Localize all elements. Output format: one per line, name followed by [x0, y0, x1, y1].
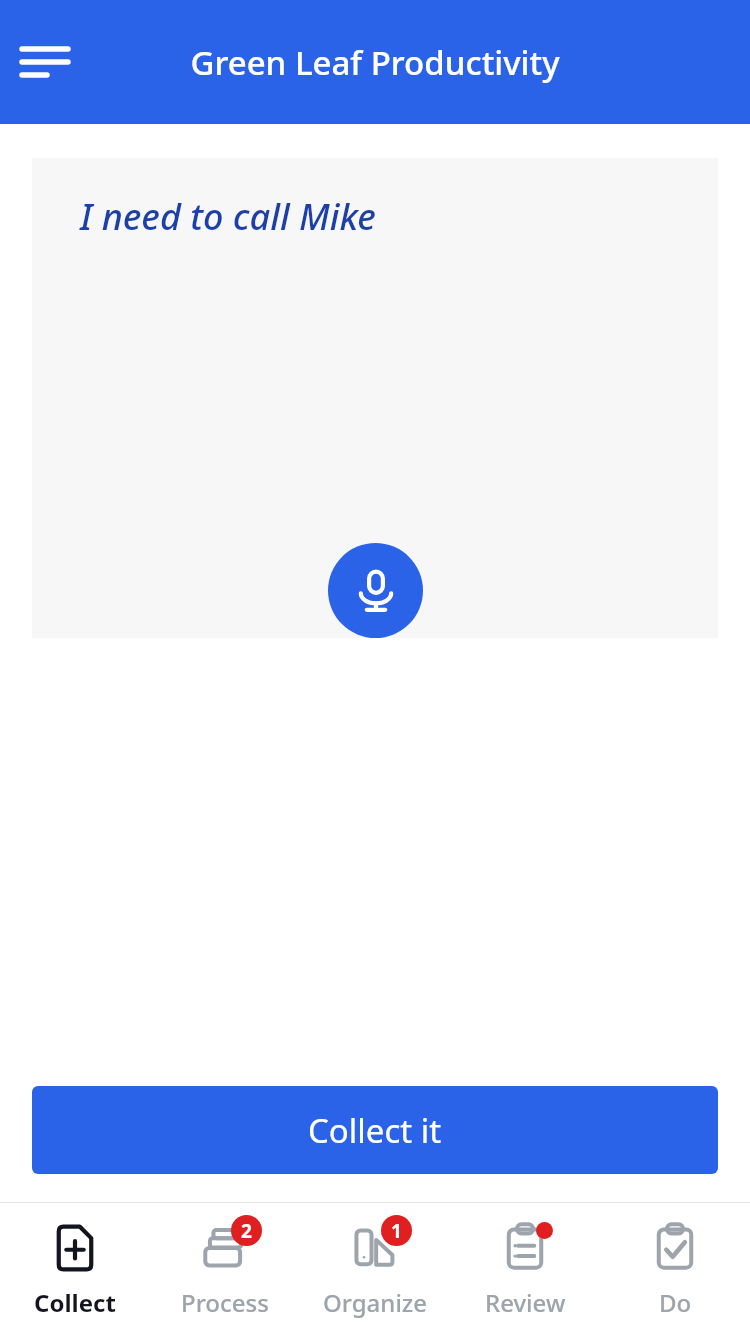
button[interactable]: I need to call Mike — [32, 158, 718, 638]
staticText: Collect it — [308, 1108, 442, 1153]
button[interactable]: Collect — [0, 1203, 150, 1334]
button[interactable]: Review — [450, 1203, 600, 1334]
button[interactable]: Collect it — [32, 1086, 718, 1174]
button[interactable]: Open navigation menu — [8, 26, 80, 98]
staticText: Process — [181, 1286, 269, 1319]
staticText: 2 — [241, 1218, 252, 1244]
button[interactable]: Do — [600, 1203, 750, 1334]
button[interactable]: Record voice note — [328, 543, 423, 638]
staticText: Organize — [323, 1286, 428, 1319]
staticText: Do — [659, 1286, 692, 1319]
button[interactable]: 2 — [150, 1203, 300, 1334]
staticText: Green Leaf Productivity — [190, 40, 560, 85]
staticText: 1 — [391, 1218, 402, 1244]
staticText: Collect — [34, 1286, 116, 1319]
staticText: I need to call Mike — [80, 192, 376, 241]
button[interactable]: 1 — [300, 1203, 450, 1334]
staticText: Review — [485, 1286, 566, 1319]
